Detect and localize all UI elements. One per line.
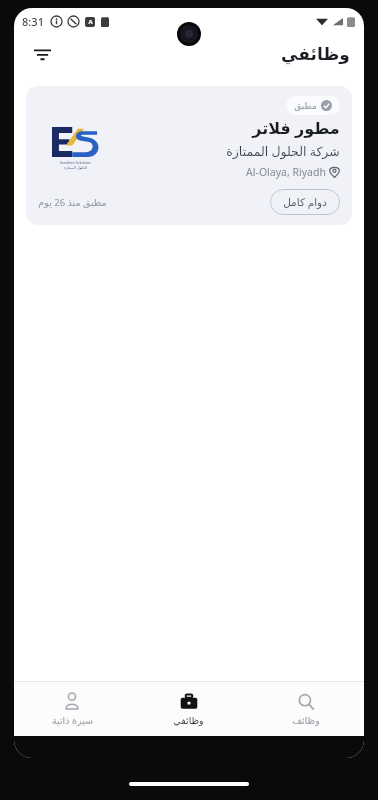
staticText: A (88, 18, 93, 26)
button[interactable]: مطبق (26, 86, 352, 225)
button[interactable]: دوام كامل (270, 189, 340, 215)
button[interactable]: وظائف (247, 682, 364, 736)
staticText: سيرة ذاتية (52, 714, 93, 727)
staticText: Al-Olaya, Riyadh (246, 165, 326, 179)
staticText: Excellent Solutions (60, 160, 91, 165)
button[interactable]: سيرة ذاتية (14, 682, 130, 736)
staticText: شركة الحلول الممتازة (226, 143, 340, 160)
staticText: وظائفي (281, 44, 350, 64)
button[interactable]: وظائفي (130, 682, 247, 736)
staticText: وظائف (292, 715, 320, 726)
staticText: مطور فلاتر (252, 117, 340, 139)
staticText: وظائفي (173, 715, 204, 726)
staticText: 8:31 (22, 14, 44, 29)
staticText: دوام كامل (283, 195, 327, 209)
staticText: مطبق (294, 101, 317, 111)
staticText: الحلول الممتازة (64, 165, 87, 170)
button[interactable]: Filter (24, 36, 60, 72)
staticText: مطبق منذ 26 يوم (38, 196, 107, 209)
